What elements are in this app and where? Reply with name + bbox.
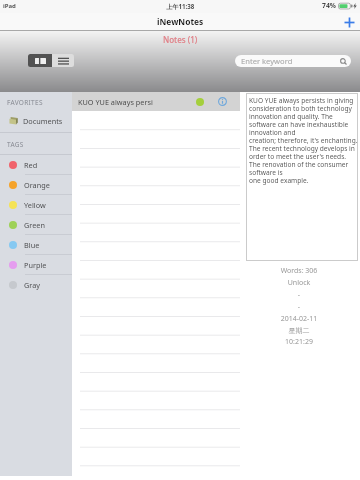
button[interactable]: Red <box>0 155 72 175</box>
staticText: 2014-02-11 <box>246 314 352 324</box>
button[interactable] <box>72 345 240 363</box>
button[interactable]: Yellow <box>0 195 72 215</box>
staticText: Purple <box>24 260 47 270</box>
staticText: TAGS <box>7 140 24 149</box>
button[interactable]: Note info <box>218 97 227 106</box>
button[interactable]: Green <box>0 215 72 235</box>
button[interactable] <box>72 291 240 309</box>
staticText: 上午11:38 <box>166 2 195 10</box>
staticText: KUO YUE always persists in giving consid… <box>249 96 358 185</box>
button[interactable]: Split view <box>28 54 52 67</box>
staticText: Words: 306 <box>246 266 352 276</box>
button[interactable] <box>72 219 240 237</box>
button[interactable] <box>72 399 240 417</box>
button[interactable] <box>72 363 240 381</box>
button[interactable] <box>72 255 240 273</box>
button[interactable] <box>72 201 240 219</box>
staticText: Notes (1) <box>163 34 198 45</box>
staticText: Red <box>24 160 38 170</box>
staticText: Documents <box>23 116 63 126</box>
button[interactable]: KUO YUE always persi <box>72 92 240 111</box>
staticText: Gray <box>24 280 40 290</box>
staticText: Blue <box>24 240 40 250</box>
button[interactable]: Enter keyword <box>235 55 351 67</box>
button[interactable]: Gray <box>0 275 72 295</box>
button[interactable]: Documents <box>0 113 72 128</box>
staticText: 星期二 <box>246 326 352 335</box>
staticText: 74% <box>322 1 336 10</box>
button[interactable] <box>72 381 240 399</box>
button[interactable]: Blue <box>0 235 72 255</box>
staticText: Orange <box>24 180 50 190</box>
button[interactable] <box>72 435 240 453</box>
button[interactable] <box>72 309 240 327</box>
staticText: 10:21:29 <box>246 337 352 347</box>
button[interactable] <box>72 147 240 165</box>
button[interactable] <box>72 129 240 147</box>
staticText: Green <box>24 220 45 230</box>
button[interactable] <box>72 327 240 345</box>
staticText: Yellow <box>24 200 46 210</box>
button[interactable]: Purple <box>0 255 72 275</box>
button[interactable]: List view <box>52 54 74 67</box>
staticText: iNewNotes <box>157 16 204 27</box>
staticText: FAVORITES <box>7 98 43 107</box>
staticText: KUO YUE always persi <box>78 97 153 107</box>
staticText: Enter keyword <box>241 56 293 66</box>
button[interactable]: Orange <box>0 175 72 195</box>
button[interactable]: KUO YUE always persists in giving consid… <box>246 93 358 261</box>
button[interactable] <box>72 237 240 255</box>
staticText: iPad <box>3 2 16 10</box>
button[interactable] <box>72 183 240 201</box>
button[interactable] <box>72 453 240 471</box>
button[interactable] <box>72 417 240 435</box>
staticText: Unlock <box>246 278 352 288</box>
button[interactable] <box>72 273 240 291</box>
button[interactable] <box>72 165 240 183</box>
button[interactable]: Add note <box>338 13 360 31</box>
